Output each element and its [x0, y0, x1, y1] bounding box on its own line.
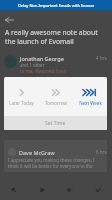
staticText: Later Today — [9, 100, 34, 106]
button[interactable]: Next Week — [73, 77, 107, 116]
staticText: Jonathan George — [20, 55, 64, 62]
staticText: to me, Respond Soon — [20, 68, 67, 74]
staticText: A really awesome note about the launch o… — [5, 28, 108, 46]
button[interactable]: Tomorrow — [39, 77, 73, 116]
button[interactable]: Jonathan George — [4, 55, 107, 74]
staticText: Delay Non-Important Emails with Snooze — [18, 3, 95, 8]
button[interactable]: Back — [1, 12, 17, 28]
button[interactable]: Delay Non-Important Emails with Snooze — [0, 0, 112, 10]
staticText: Tomorrow — [45, 100, 67, 106]
button[interactable]: Dave McGraw — [8, 148, 107, 169]
staticText: Set Time — [45, 120, 66, 127]
button[interactable]: Set Time — [4, 116, 107, 130]
staticText: I appreciate you making these changes, I… — [8, 157, 95, 169]
staticText: 4 hrs — [96, 55, 107, 61]
staticText: Dave McGraw — [19, 149, 96, 156]
staticText: and 1 other — [20, 62, 45, 68]
button[interactable]: Later Today — [4, 77, 39, 116]
staticText: Next Week — [79, 100, 102, 106]
staticText: 6 hrs — [96, 149, 107, 155]
